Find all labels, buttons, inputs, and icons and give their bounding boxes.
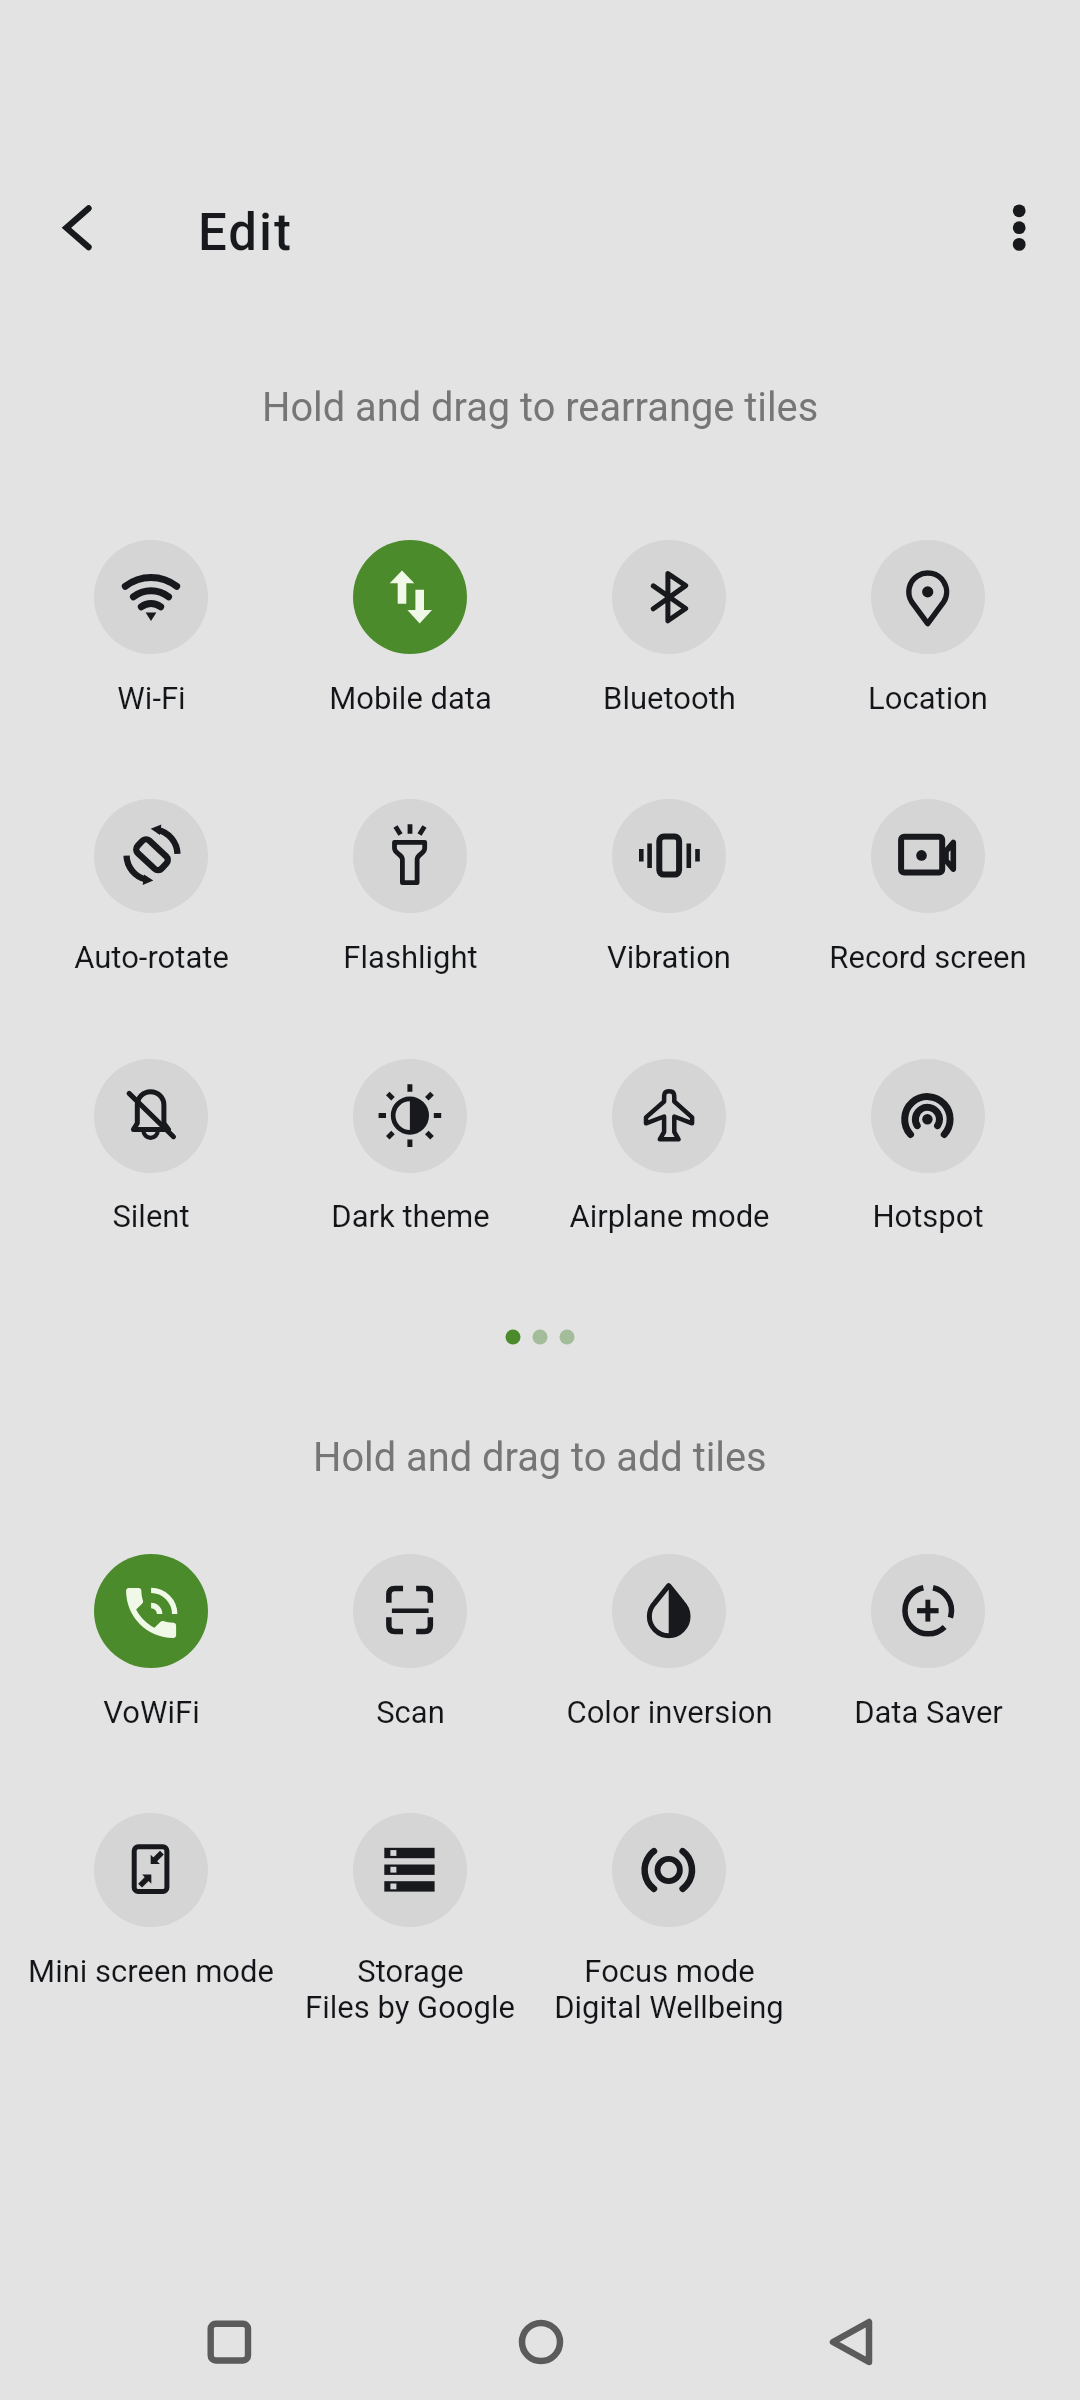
staticText: Mini screen mode (28, 1953, 274, 1989)
button[interactable]: Bluetooth (612, 540, 726, 654)
button[interactable]: Scan (353, 1554, 467, 1668)
staticText: Record screen (829, 939, 1027, 975)
button[interactable]: Flashlight (353, 799, 467, 913)
staticText: Bluetooth (603, 680, 736, 716)
button[interactable]: Location (871, 540, 985, 654)
button[interactable]: Hotspot (871, 1059, 985, 1173)
button[interactable]: Vibration (612, 799, 726, 913)
staticText: Auto-rotate (74, 939, 229, 975)
staticText: Dark theme (331, 1198, 490, 1234)
staticText: Hotspot (872, 1198, 984, 1234)
button[interactable]: Focus mode (612, 1813, 726, 1927)
staticText: Airplane mode (569, 1198, 770, 1234)
button[interactable]: Storage (353, 1813, 467, 1927)
staticText: Mobile data (329, 680, 492, 716)
staticText: Color inversion (566, 1694, 773, 1730)
button[interactable]: Silent (94, 1059, 208, 1173)
button[interactable]: Dark theme (353, 1059, 467, 1173)
button[interactable]: Auto-rotate (94, 799, 208, 913)
staticText: VoWiFi (103, 1694, 200, 1730)
button[interactable]: Mobile data (353, 540, 467, 654)
button[interactable]: Record screen (871, 799, 985, 913)
staticText: Edit (198, 203, 294, 263)
staticText: Hold and drag to add tiles (313, 1434, 767, 1481)
button[interactable]: Home (481, 2282, 601, 2400)
button[interactable]: Back (28, 178, 124, 274)
staticText: Vibration (607, 939, 731, 975)
button[interactable]: Data Saver (871, 1554, 985, 1668)
button[interactable]: VoWiFi (94, 1554, 208, 1668)
button[interactable]: Back (791, 2282, 911, 2400)
staticText: Flashlight (343, 939, 478, 975)
staticText: Location (868, 680, 988, 716)
staticText: Storage (357, 1953, 464, 1989)
button[interactable]: Mini screen mode (94, 1813, 208, 1927)
staticText: Data Saver (854, 1694, 1003, 1730)
staticText: Scan (376, 1694, 445, 1730)
staticText: Digital Wellbeing (554, 1989, 784, 2025)
staticText: Files by Google (305, 1989, 515, 2025)
button[interactable]: Recents (169, 2282, 289, 2400)
button[interactable]: Color inversion (612, 1554, 726, 1668)
button[interactable]: Wi-Fi (94, 540, 208, 654)
staticText: Hold and drag to rearrange tiles (262, 384, 819, 431)
staticText: Focus mode (584, 1953, 755, 1989)
button[interactable]: More options (972, 178, 1068, 274)
button[interactable]: Airplane mode (612, 1059, 726, 1173)
staticText: Wi-Fi (117, 680, 186, 716)
staticText: Silent (112, 1198, 190, 1234)
